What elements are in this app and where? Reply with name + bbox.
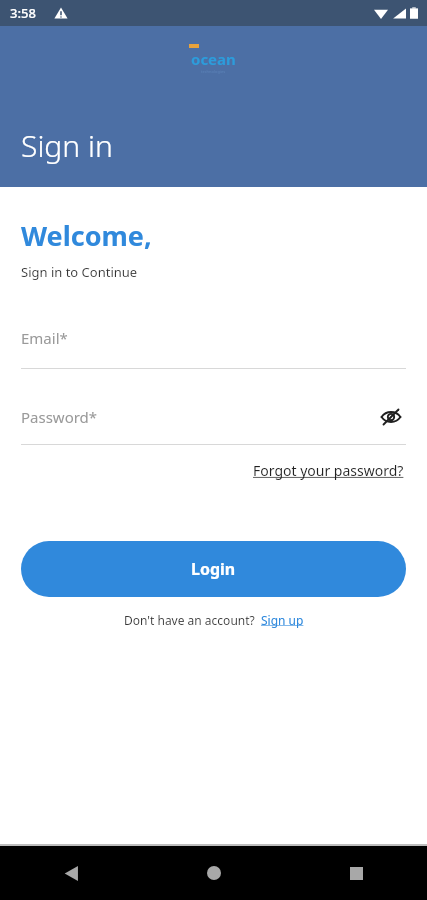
- staticText: Sign in: [21, 125, 113, 166]
- button[interactable]: Sign up: [261, 612, 304, 628]
- staticText: Email*: [21, 328, 68, 348]
- staticText: Don't have an account?: [124, 612, 255, 628]
- staticText: Password*: [21, 407, 376, 427]
- staticText: ocean: [191, 49, 236, 69]
- staticText: Welcome,: [21, 217, 152, 254]
- button[interactable]: Back: [0, 846, 143, 900]
- staticText: Sign up: [261, 612, 304, 628]
- button[interactable]: Recent apps: [285, 846, 427, 900]
- button[interactable]: Email*: [21, 328, 406, 369]
- button[interactable]: Home: [143, 846, 285, 900]
- button[interactable]: Login: [21, 541, 406, 597]
- staticText: 3:58: [10, 4, 36, 22]
- staticText: technologies: [201, 69, 226, 74]
- staticText: Forgot your password?: [253, 461, 404, 480]
- button[interactable]: Password*: [21, 402, 406, 432]
- staticText: Login: [191, 558, 236, 580]
- button[interactable]: Show password: [376, 402, 406, 432]
- button[interactable]: Forgot your password?: [253, 461, 404, 480]
- staticText: Sign in to Continue: [21, 263, 138, 281]
